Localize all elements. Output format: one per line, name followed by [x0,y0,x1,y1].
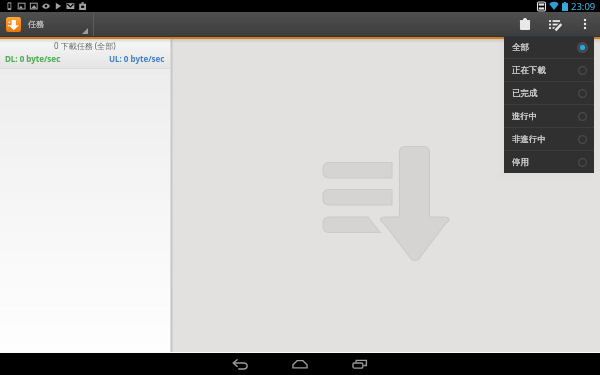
button[interactable]: 已完成 [504,82,594,104]
button[interactable]: 全部 [504,37,594,58]
staticText: 停用 [512,157,529,168]
button[interactable]: Home [274,353,326,375]
staticText: 進行中 [512,111,538,122]
button[interactable]: 非進行中 [504,128,594,150]
staticText: UL: 0 byte/sec [109,53,165,64]
staticText: 全部 [512,42,529,53]
button[interactable]: Recents [334,353,386,375]
button[interactable]: 停用 [504,151,594,173]
button[interactable]: 任務 [0,12,93,36]
staticText: 已完成 [512,88,538,99]
staticText: 正在下載 [512,65,546,76]
staticText: 0 下載任務 (全部) [54,40,116,51]
staticText: 23:09 [571,0,596,12]
button[interactable]: Back [214,353,266,375]
button[interactable]: Edit list [544,12,566,36]
button[interactable]: 進行中 [504,105,594,127]
button[interactable]: 正在下載 [504,59,594,81]
button[interactable]: Paste [514,12,536,36]
staticText: 任務 [28,19,44,29]
staticText: 非進行中 [512,134,546,145]
button[interactable]: More options [574,12,596,36]
staticText: DL: 0 byte/sec [5,53,61,64]
